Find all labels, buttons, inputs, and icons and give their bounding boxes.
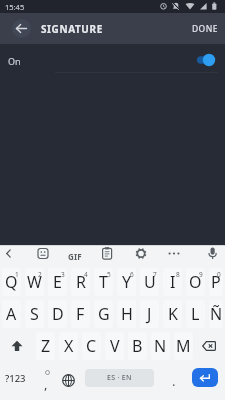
button[interactable]: A	[2, 300, 21, 328]
button[interactable]: Y	[117, 268, 136, 296]
button[interactable]: H	[117, 300, 136, 328]
button[interactable]: G	[94, 300, 113, 328]
button[interactable]	[195, 330, 225, 362]
staticText: F	[76, 303, 85, 325]
staticText: A	[6, 303, 17, 325]
staticText: On	[8, 55, 21, 67]
button[interactable]: R	[71, 268, 90, 296]
button[interactable]	[193, 246, 225, 266]
button[interactable]: T	[94, 268, 113, 296]
button[interactable]	[0, 330, 34, 362]
staticText: 3	[61, 270, 65, 279]
button[interactable]: C	[82, 332, 101, 360]
staticText: GIF	[68, 251, 82, 262]
button[interactable]	[192, 368, 218, 387]
staticText: ,	[44, 375, 48, 393]
button[interactable]: D	[48, 300, 67, 328]
staticText: X	[64, 335, 74, 357]
button[interactable]: ?123	[0, 362, 34, 394]
staticText: G	[98, 303, 110, 325]
button[interactable]: X	[59, 332, 78, 360]
button[interactable]: J	[140, 300, 159, 328]
button[interactable]	[65, 246, 97, 266]
button[interactable]	[129, 246, 161, 266]
staticText: 1	[15, 270, 19, 279]
button[interactable]: DONE	[185, 13, 225, 44]
staticText: U	[144, 271, 156, 293]
staticText: C	[86, 335, 97, 357]
staticText: 6	[130, 270, 134, 279]
staticText: 4	[84, 270, 88, 279]
staticText: D	[52, 303, 64, 325]
staticText: R	[76, 271, 86, 293]
button[interactable]: Q	[2, 268, 21, 296]
button[interactable]: O	[186, 268, 205, 296]
staticText: V	[110, 335, 120, 357]
button[interactable]: .	[159, 362, 182, 394]
button[interactable]	[161, 246, 193, 266]
staticText: 7	[153, 270, 157, 279]
staticText: 5	[107, 270, 111, 279]
staticText: I	[170, 271, 176, 293]
staticText: SIGNATURE	[41, 22, 103, 36]
button[interactable]: V	[105, 332, 124, 360]
staticText: 0	[217, 270, 221, 279]
staticText: P	[211, 271, 221, 293]
button[interactable]: S	[25, 300, 44, 328]
button[interactable]: I	[163, 268, 182, 296]
staticText: E	[53, 271, 62, 293]
button[interactable]: P	[209, 268, 223, 296]
staticText: K	[168, 303, 178, 325]
staticText: ES · EN	[107, 373, 132, 383]
staticText: Z	[41, 335, 51, 357]
button[interactable]: L	[186, 300, 205, 328]
button[interactable]: ES · EN	[85, 369, 154, 387]
button[interactable]: U	[140, 268, 159, 296]
staticText: J	[147, 303, 152, 325]
staticText: DONE	[192, 23, 218, 35]
staticText: 9	[199, 270, 203, 279]
button[interactable]: Ñ	[209, 300, 223, 328]
staticText: 8	[176, 270, 180, 279]
staticText: M	[176, 335, 191, 357]
button[interactable]	[33, 246, 65, 266]
button[interactable]: ,	[34, 362, 57, 394]
button[interactable]: On	[0, 44, 225, 77]
button[interactable]	[12, 19, 31, 38]
button[interactable]	[0, 246, 33, 266]
button[interactable]: K	[163, 300, 182, 328]
button[interactable]: Z	[36, 332, 55, 360]
staticText: Q	[5, 271, 18, 293]
button[interactable]: W	[25, 268, 44, 296]
staticText: L	[191, 303, 200, 325]
staticText: S	[30, 303, 39, 325]
button[interactable]: N	[151, 332, 170, 360]
staticText: 15:45	[5, 2, 25, 12]
staticText: T	[99, 271, 108, 293]
button[interactable]: B	[128, 332, 147, 360]
staticText: Y	[122, 271, 132, 293]
staticText: Ñ	[210, 303, 223, 325]
button[interactable]	[57, 362, 80, 394]
staticText: .	[172, 372, 176, 390]
button[interactable]	[97, 246, 129, 266]
staticText: ?123	[5, 372, 26, 385]
staticText: O	[189, 271, 202, 293]
button[interactable]: M	[174, 332, 193, 360]
staticText: H	[121, 303, 133, 325]
staticText: W	[27, 271, 42, 293]
button[interactable]: E	[48, 268, 67, 296]
staticText: N	[154, 335, 167, 357]
staticText: B	[132, 335, 143, 357]
button[interactable]: F	[71, 300, 90, 328]
staticText: 2	[38, 270, 42, 279]
